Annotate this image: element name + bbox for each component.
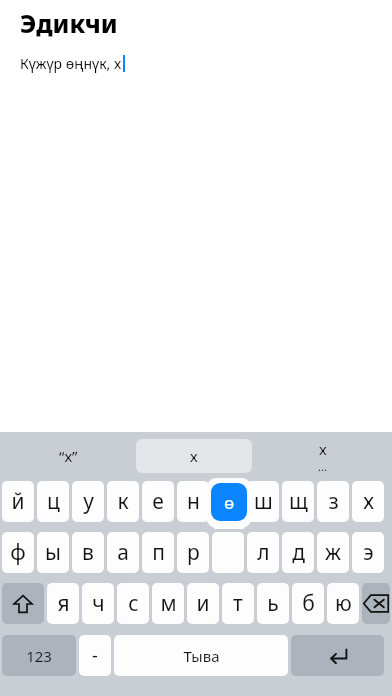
staticText: н [187,487,200,516]
staticText: д [292,538,305,567]
staticText: Эдикчи [20,6,118,40]
button[interactable]: у [72,481,104,522]
button[interactable]: - [79,635,111,676]
button[interactable]: х [252,434,392,478]
staticText: и [196,589,210,618]
button[interactable]: м [152,583,184,624]
staticText: ы [45,538,61,567]
staticText: ч [92,589,105,618]
button[interactable]: ч [82,583,114,624]
button[interactable]: с [117,583,149,624]
staticText: е [152,487,164,516]
staticText: з [328,487,339,516]
button[interactable] [212,532,244,573]
staticText: ь [267,589,279,618]
button[interactable]: ы [37,532,69,573]
staticText: х [190,446,198,466]
button[interactable]: ю [327,583,359,624]
button[interactable]: э [352,532,384,573]
staticText: р [187,538,200,567]
staticText: ... [318,459,327,474]
staticText: “х” [59,446,78,466]
button[interactable]: ш [247,481,279,522]
staticText: ц [47,487,60,516]
button[interactable]: л [247,532,279,573]
staticText: ө [224,491,235,514]
button[interactable]: х [136,439,252,473]
button[interactable]: т [222,583,254,624]
staticText: м [160,589,177,618]
button[interactable]: ц [37,481,69,522]
button[interactable]: з [317,481,349,522]
staticText: в [82,538,94,567]
staticText: п [152,538,165,567]
staticText: я [57,589,70,618]
button[interactable]: и [187,583,219,624]
button[interactable]: а [107,532,139,573]
staticText: у [83,487,94,516]
staticText: л [257,538,270,567]
button[interactable]: д [282,532,314,573]
staticText: ф [10,538,26,567]
button[interactable]: щ [282,481,314,522]
button[interactable]: я [47,583,79,624]
button[interactable]: п [142,532,174,573]
staticText: ю [335,589,352,618]
staticText: Тыва [183,646,220,666]
staticText: к [117,487,129,516]
staticText: х [363,487,374,516]
staticText: б [302,589,315,618]
button[interactable]: Тыва [114,635,288,676]
staticText: - [92,643,98,668]
button[interactable]: н [177,481,209,522]
button[interactable]: ь [257,583,289,624]
staticText: х [319,439,327,459]
button[interactable]: 123 [2,635,76,676]
button[interactable]: ө [211,483,247,521]
staticText: ш [254,487,273,516]
staticText: а [117,538,129,567]
button[interactable]: Return [291,635,384,676]
staticText: с [128,589,139,618]
button[interactable]: р [177,532,209,573]
button[interactable]: в [72,532,104,573]
button[interactable]: ж [317,532,349,573]
staticText: й [11,487,25,516]
button[interactable]: б [292,583,324,624]
button[interactable]: Backspace [362,583,390,624]
staticText: Күжүр өңнүк, х [20,54,122,73]
button[interactable]: к [107,481,139,522]
button[interactable]: “х” [0,434,136,478]
button[interactable]: х [352,481,384,522]
button[interactable]: е [142,481,174,522]
staticText: ж [325,538,341,567]
button[interactable]: й [2,481,34,522]
button[interactable]: ф [2,532,34,573]
button[interactable]: Shift [2,583,44,624]
staticText: э [363,538,374,567]
staticText: щ [289,487,308,516]
staticText: т [233,589,243,618]
staticText: 123 [26,646,52,666]
